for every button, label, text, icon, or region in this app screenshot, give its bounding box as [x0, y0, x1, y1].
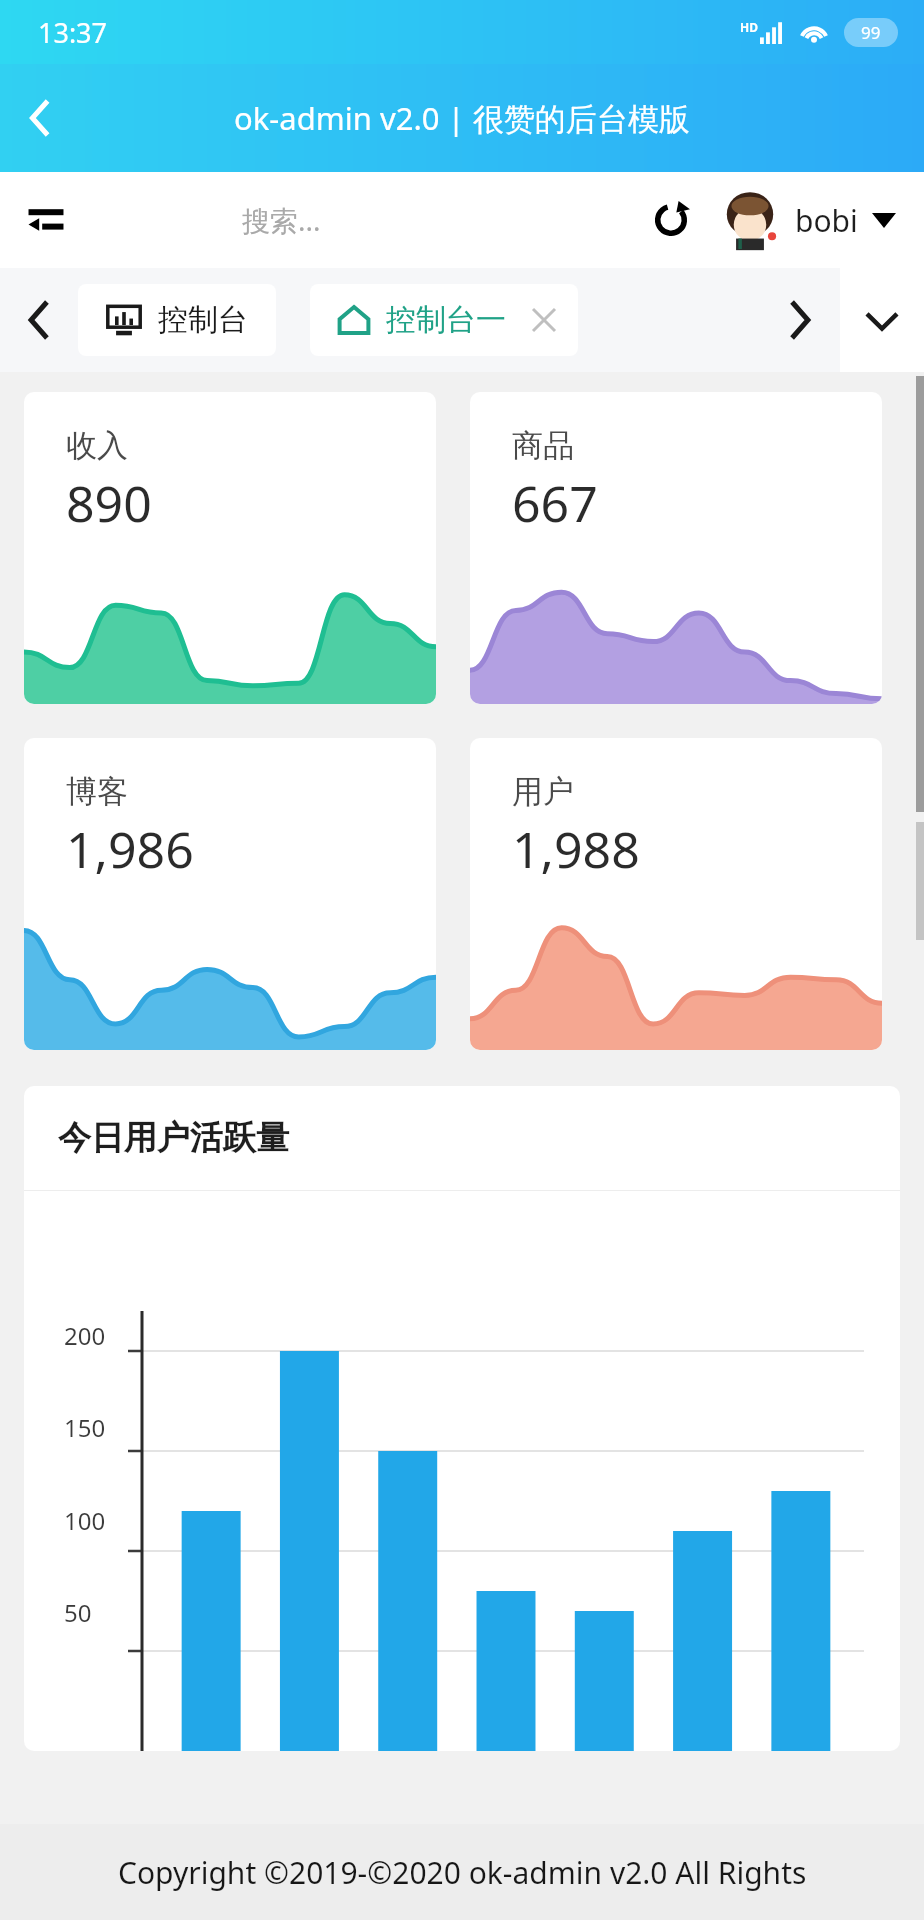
staticText: 13:37 [38, 14, 108, 51]
button[interactable]: Next tab [760, 268, 840, 372]
staticText: Copyright ©2019-©2020 ok-admin v2.0 All … [118, 1852, 807, 1893]
staticText: 博客 [66, 772, 128, 811]
staticText: 搜索... [242, 201, 321, 239]
staticText: 890 [66, 469, 152, 537]
button[interactable]: More tabs [840, 268, 924, 372]
button[interactable]: Toggle menu [0, 172, 92, 268]
staticText: 用户 [512, 772, 574, 811]
button[interactable]: Back [0, 64, 80, 172]
staticText: 100 [64, 1504, 106, 1537]
button[interactable]: 控制台 [78, 284, 276, 356]
button[interactable]: Refresh [621, 172, 721, 268]
button[interactable]: 收入 [24, 392, 436, 704]
staticText: 收入 [66, 426, 128, 465]
staticText: 控制台 [158, 301, 248, 339]
button[interactable]: 用户 [470, 738, 882, 1050]
staticText: 1,986 [66, 815, 194, 883]
staticText: 150 [64, 1411, 106, 1444]
button[interactable]: 搜索... [92, 172, 621, 268]
button[interactable]: 商品 [470, 392, 882, 704]
staticText: bobi [795, 200, 858, 241]
staticText: 99 [861, 21, 881, 44]
staticText: 控制台一 [386, 301, 506, 339]
button[interactable]: Close tab [526, 302, 562, 338]
staticText: HD [740, 19, 758, 35]
staticText: 商品 [512, 426, 574, 465]
staticText: ok-admin v2.0 | 很赞的后台模版 [234, 97, 690, 139]
staticText: 667 [512, 469, 598, 537]
button[interactable]: 控制台一 [310, 284, 578, 356]
button[interactable]: bobi [721, 191, 896, 249]
staticText: 1,988 [512, 815, 640, 883]
staticText: 50 [64, 1596, 92, 1629]
button[interactable]: 今日用户活跃量 [24, 1086, 900, 1751]
button[interactable]: Previous tab [0, 268, 78, 372]
staticText: 今日用户活跃量 [58, 1117, 289, 1159]
staticText: 200 [64, 1319, 106, 1352]
button[interactable]: 博客 [24, 738, 436, 1050]
